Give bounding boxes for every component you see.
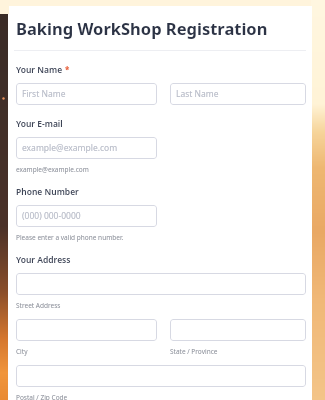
button[interactable]: Last Name bbox=[170, 83, 306, 105]
staticText: (000) 000-0000 bbox=[22, 210, 81, 222]
staticText: State / Province bbox=[170, 347, 218, 356]
staticText: example@example.com bbox=[22, 142, 118, 154]
staticText: Phone Number bbox=[16, 186, 79, 198]
button[interactable] bbox=[16, 273, 306, 295]
staticText: Your E-mail bbox=[16, 118, 63, 130]
staticText: First Name bbox=[22, 88, 66, 100]
staticText: Your Name bbox=[16, 64, 63, 76]
button[interactable]: First Name bbox=[16, 83, 157, 105]
staticText: Your Address bbox=[16, 254, 71, 266]
button[interactable] bbox=[16, 365, 306, 387]
staticText: * bbox=[65, 64, 70, 75]
staticText: Baking WorkShop Registration Form bbox=[16, 17, 312, 39]
staticText: Street Address bbox=[16, 301, 61, 310]
button[interactable]: example@example.com bbox=[16, 137, 157, 159]
staticText: example@example.com bbox=[16, 165, 89, 174]
button[interactable] bbox=[16, 319, 157, 341]
button[interactable] bbox=[170, 319, 306, 341]
button[interactable]: (000) 000-0000 bbox=[16, 205, 157, 227]
staticText: Last Name bbox=[176, 88, 219, 100]
staticText: City bbox=[16, 347, 28, 356]
staticText: Postal / Zip Code bbox=[16, 393, 68, 400]
staticText: Please enter a valid phone number. bbox=[16, 233, 124, 242]
